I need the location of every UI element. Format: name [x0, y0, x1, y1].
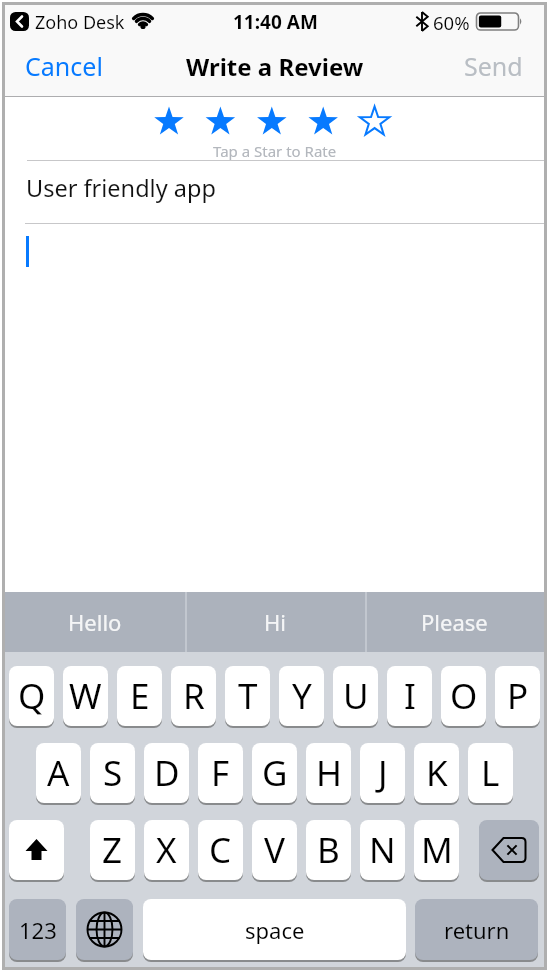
staticText: B — [317, 826, 340, 874]
staticText: E — [130, 672, 150, 720]
staticText: Hello — [68, 607, 122, 637]
staticText: 11:40 AM — [233, 9, 318, 35]
button[interactable]: B — [306, 820, 351, 880]
staticText: F — [211, 749, 230, 797]
staticText: R — [183, 672, 205, 720]
button[interactable]: T — [225, 666, 270, 726]
staticText: 60% — [433, 10, 470, 35]
staticText: V — [264, 826, 286, 874]
staticText: return — [444, 915, 510, 945]
button[interactable]: Cancel — [25, 38, 115, 94]
button[interactable] — [479, 820, 539, 880]
button[interactable]: C — [198, 820, 243, 880]
staticText: A — [47, 749, 70, 797]
button[interactable]: 123 — [9, 899, 66, 960]
button[interactable]: U — [333, 666, 378, 726]
button[interactable]: P — [495, 666, 540, 726]
staticText: Please — [421, 607, 488, 637]
staticText: Hi — [264, 607, 286, 637]
staticText: G — [262, 749, 288, 797]
button[interactable]: G — [252, 743, 297, 803]
button[interactable] — [5, 97, 544, 157]
button[interactable]: Hi — [185, 592, 365, 652]
button[interactable]: M — [414, 820, 459, 880]
staticText: Cancel — [25, 49, 103, 83]
staticText: I — [404, 672, 416, 720]
staticText: J — [378, 749, 388, 797]
button[interactable]: W — [63, 666, 108, 726]
staticText: W — [69, 672, 102, 720]
staticText: 123 — [19, 915, 57, 945]
button[interactable]: Q — [9, 666, 54, 726]
button[interactable]: return — [415, 899, 538, 960]
staticText: S — [103, 749, 123, 797]
staticText: D — [154, 749, 180, 797]
staticText: H — [316, 749, 342, 797]
button[interactable] — [9, 820, 64, 880]
staticText: Z — [102, 826, 123, 874]
button[interactable]: H — [306, 743, 351, 803]
staticText: space — [245, 915, 305, 945]
button[interactable]: N — [360, 820, 405, 880]
staticText: M — [421, 826, 453, 874]
staticText: User friendly app — [26, 172, 216, 204]
button[interactable]: Hello — [5, 592, 185, 652]
button[interactable] — [76, 899, 133, 960]
button[interactable]: V — [252, 820, 297, 880]
button[interactable]: F — [198, 743, 243, 803]
staticText: T — [238, 672, 258, 720]
staticText: P — [507, 672, 529, 720]
staticText: X — [156, 826, 177, 874]
button[interactable]: E — [117, 666, 162, 726]
staticText: Write a Review — [186, 50, 364, 83]
staticText: N — [369, 826, 396, 874]
button[interactable]: A — [36, 743, 81, 803]
button[interactable]: Y — [279, 666, 324, 726]
staticText: Send — [464, 49, 523, 83]
button[interactable]: L — [468, 743, 513, 803]
button[interactable]: K — [414, 743, 459, 803]
staticText: Y — [292, 672, 312, 720]
button[interactable]: Z — [90, 820, 135, 880]
button[interactable]: D — [144, 743, 189, 803]
button[interactable]: X — [144, 820, 189, 880]
button[interactable]: O — [441, 666, 486, 726]
button[interactable]: Please — [365, 592, 544, 652]
staticText: L — [481, 749, 500, 797]
button[interactable]: I — [387, 666, 432, 726]
staticText: K — [426, 749, 448, 797]
staticText: Q — [18, 672, 46, 720]
button[interactable]: Send — [445, 38, 523, 94]
button[interactable]: User friendly app — [26, 159, 526, 216]
button[interactable]: R — [171, 666, 216, 726]
staticText: O — [450, 672, 478, 720]
button[interactable]: space — [143, 899, 406, 960]
staticText: C — [209, 826, 232, 874]
staticText: U — [343, 672, 369, 720]
staticText: Tap a Star to Rate — [213, 141, 337, 161]
staticText: Zoho Desk — [35, 10, 125, 35]
button[interactable]: S — [90, 743, 135, 803]
button[interactable]: J — [360, 743, 405, 803]
